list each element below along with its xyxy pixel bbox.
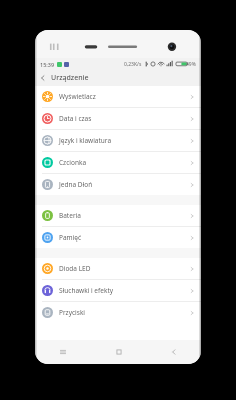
button[interactable]: Back	[35, 70, 51, 86]
staticText: Pamięć	[59, 233, 82, 242]
staticText: Przyciski	[59, 308, 86, 317]
staticText: Słuchawki i efekty	[59, 286, 114, 295]
button[interactable]: Pamięć	[35, 227, 201, 248]
button[interactable]: Data i czas	[35, 108, 201, 129]
button[interactable]: Home	[91, 340, 146, 364]
button[interactable]: Język i klawiatura	[35, 130, 201, 151]
staticText: Czcionka	[59, 158, 87, 167]
staticText: Język i klawiatura	[59, 136, 112, 145]
staticText: Data i czas	[59, 114, 92, 123]
staticText: Wyświetlacz	[59, 92, 96, 101]
button[interactable]: Dioda LED	[35, 258, 201, 279]
staticText: Dioda LED	[59, 264, 91, 273]
button[interactable]: Menu	[35, 340, 91, 364]
staticText: Jedna Dłoń	[59, 180, 93, 189]
button[interactable]: Czcionka	[35, 152, 201, 173]
staticText: 15:39	[40, 61, 55, 68]
staticText: Urządzenie	[51, 73, 89, 83]
staticText: 49%	[186, 61, 196, 68]
button[interactable]: Wyświetlacz	[35, 86, 201, 107]
button[interactable]: Bateria	[35, 205, 201, 226]
button[interactable]: Przyciski	[35, 302, 201, 323]
button[interactable]: Jedna Dłoń	[35, 174, 201, 195]
button[interactable]: Słuchawki i efekty	[35, 280, 201, 301]
staticText: 0,23K/s	[124, 61, 142, 68]
staticText: Bateria	[59, 211, 81, 220]
button[interactable]: Back	[146, 340, 201, 364]
